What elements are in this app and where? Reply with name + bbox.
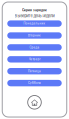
staticText: Четверг	[28, 58, 40, 61]
button[interactable]: Суббота	[7, 80, 62, 86]
staticText: Пятница	[28, 69, 41, 73]
button[interactable]: Пятница	[7, 68, 62, 74]
staticText: Серия зарядок	[22, 8, 47, 12]
staticText: Среда	[29, 46, 39, 49]
button[interactable]: Home	[27, 95, 42, 110]
button[interactable]: Четверг	[7, 56, 62, 62]
button[interactable]: Понедельник	[7, 20, 62, 27]
button[interactable]: Вторник	[7, 32, 62, 39]
staticText: Выберите день недели	[14, 14, 54, 18]
button[interactable]: Среда	[7, 44, 62, 51]
staticText: Вторник	[28, 34, 41, 37]
staticText: Суббота	[28, 81, 41, 85]
staticText: Понедельник	[23, 22, 45, 25]
